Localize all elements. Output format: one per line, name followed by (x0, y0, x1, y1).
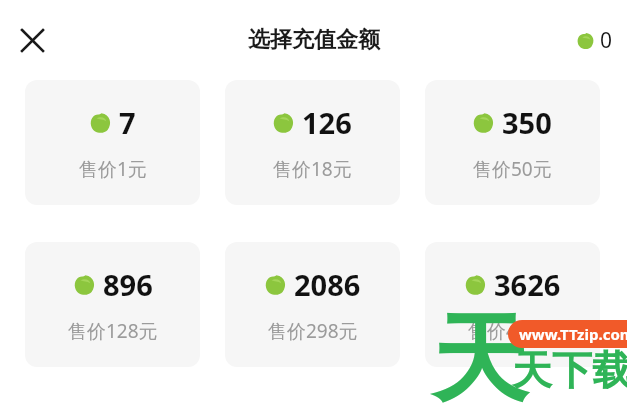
button[interactable]: 0 (577, 26, 613, 55)
staticText: 2086 (294, 265, 361, 304)
staticText: 售价18元 (273, 156, 352, 182)
button[interactable]: 896 (25, 242, 200, 367)
button[interactable]: 126 (225, 80, 400, 205)
staticText: 350 (502, 103, 552, 142)
staticText: 7 (119, 103, 136, 142)
staticText: 选择充值金额 (248, 26, 380, 54)
button[interactable]: 2086 (225, 242, 400, 367)
staticText: 售价50元 (473, 156, 552, 182)
button[interactable]: 3626 (425, 242, 600, 367)
staticText: 3626 (494, 265, 561, 304)
button[interactable]: Close (12, 20, 52, 60)
staticText: 896 (103, 265, 153, 304)
staticText: 售价298元 (268, 318, 358, 344)
staticText: 天下载 (512, 345, 627, 395)
staticText: 售价128元 (68, 318, 158, 344)
staticText: 售价1元 (79, 156, 147, 182)
staticText: 0 (600, 26, 613, 55)
staticText: 126 (302, 103, 352, 142)
button[interactable]: 7 (25, 80, 200, 205)
staticText: www.TTzip.com (519, 324, 627, 344)
button[interactable]: 350 (425, 80, 600, 205)
staticText: 天 (432, 300, 528, 407)
staticText: 售价498元 (468, 318, 558, 344)
